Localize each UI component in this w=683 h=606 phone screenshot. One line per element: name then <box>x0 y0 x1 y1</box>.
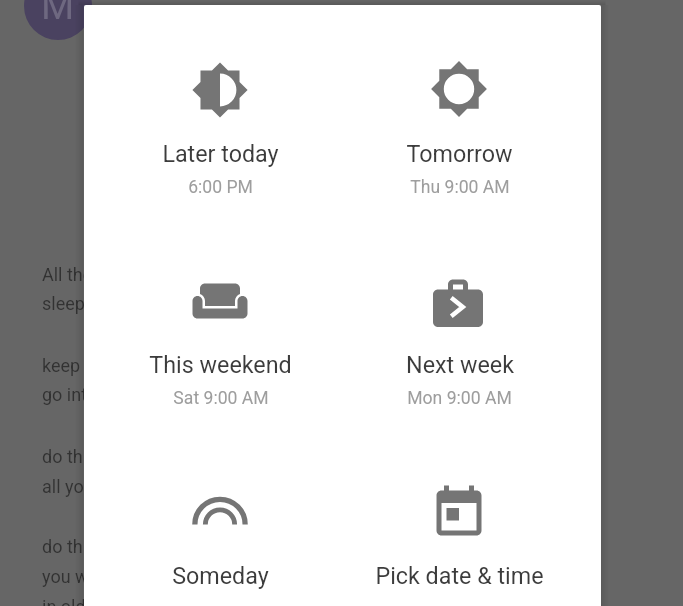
staticText: M <box>41 0 75 29</box>
staticText: Tomorrow <box>406 140 513 167</box>
staticText: Someday <box>172 562 269 589</box>
button[interactable]: Later today <box>91 25 350 232</box>
other: Tomorrow <box>429 59 489 119</box>
staticText: go into that <box>42 384 134 405</box>
other: Later today <box>190 60 250 120</box>
button[interactable]: Tomorrow <box>330 25 589 232</box>
other: This weekend <box>190 271 250 331</box>
staticText: This weekend <box>149 351 292 378</box>
staticText: Next week <box>406 351 514 378</box>
button[interactable]: This weekend <box>91 236 350 443</box>
staticText: all you need <box>42 476 138 497</box>
other: Someday <box>190 480 250 540</box>
staticText: Later today <box>162 140 279 167</box>
staticText: you will find <box>42 566 137 587</box>
staticText: keep moving <box>42 355 144 376</box>
staticText: Sat 9:00 AM <box>173 388 269 409</box>
other: Pick date & time <box>429 483 489 543</box>
staticText: do things that <box>42 446 153 467</box>
staticText: sleeping in the <box>42 293 158 314</box>
staticText: Mon 9:00 AM <box>407 388 512 409</box>
button[interactable]: Next week <box>330 236 589 443</box>
other: Next week <box>428 272 488 332</box>
staticText: All the nobility <box>42 264 155 285</box>
staticText: do this all the <box>42 536 150 557</box>
staticText: Thu 9:00 AM <box>410 177 510 198</box>
button[interactable]: Someday <box>91 447 350 606</box>
button[interactable]: Pick date & time <box>330 447 589 606</box>
staticText: 6:00 PM <box>188 177 253 198</box>
staticText: in old age now <box>42 596 158 606</box>
staticText: Pick date & time <box>375 562 544 589</box>
